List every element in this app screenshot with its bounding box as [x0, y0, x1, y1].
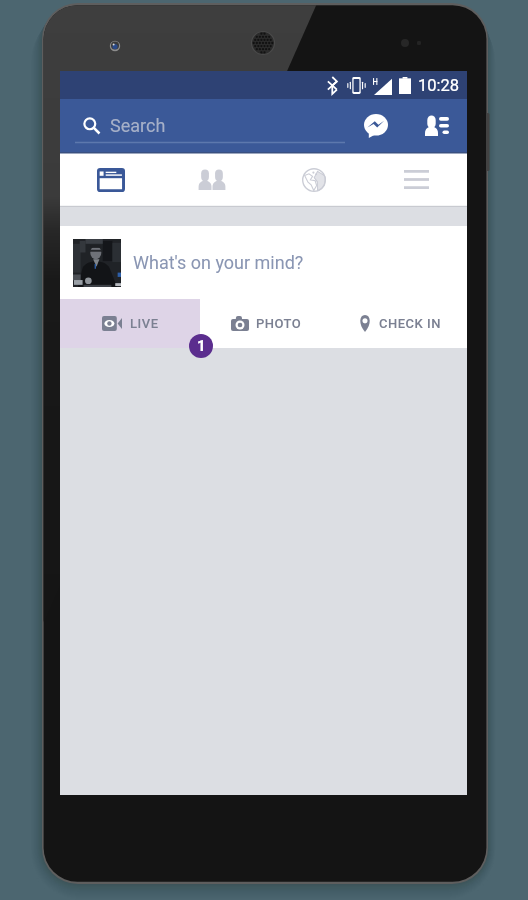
staticText: PHOTO: [256, 316, 302, 331]
staticText: 1: [197, 337, 206, 355]
button[interactable]: Friend requests: [161, 152, 263, 207]
button[interactable]: Search: [60, 99, 350, 152]
staticText: CHECK IN: [379, 316, 441, 331]
button[interactable]: What's on your mind?: [60, 226, 467, 299]
button[interactable]: CHECK IN: [333, 299, 467, 348]
button[interactable]: LIVE: [60, 299, 200, 348]
button[interactable]: 1 live notification: [189, 334, 213, 358]
staticText: Search: [110, 115, 166, 136]
button[interactable]: Menu: [365, 152, 467, 207]
button[interactable]: Contacts: [410, 99, 462, 152]
button[interactable]: News Feed: [60, 152, 161, 207]
button[interactable]: PHOTO: [200, 299, 333, 348]
staticText: LIVE: [130, 316, 159, 331]
staticText: What's on your mind?: [133, 252, 304, 273]
staticText: 10:28: [418, 76, 460, 95]
button[interactable]: Notifications: [263, 152, 365, 207]
button[interactable]: Messenger: [350, 99, 402, 152]
